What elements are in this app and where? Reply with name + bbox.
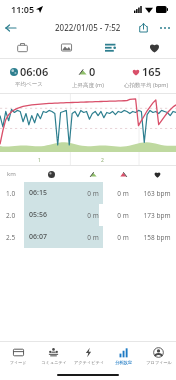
staticText: 0 m xyxy=(78,233,108,242)
button[interactable]: Splits xyxy=(88,37,132,58)
button[interactable]: 06:06 xyxy=(0,59,58,93)
staticText: 0 m xyxy=(108,189,138,198)
button[interactable]: Summary xyxy=(0,37,44,58)
staticText: コミュニティ xyxy=(41,360,67,365)
staticText: 06:06 xyxy=(20,64,49,79)
staticText: 平均ペース xyxy=(15,81,43,88)
button[interactable]: 分析設定 xyxy=(106,342,141,370)
button[interactable]: フィード xyxy=(0,342,36,370)
staticText: 06:15 xyxy=(29,188,78,198)
button[interactable]: Map xyxy=(44,37,88,58)
button[interactable]: 2.5 xyxy=(0,226,176,248)
staticText: 173 bpm xyxy=(138,211,176,220)
staticText: フィード xyxy=(9,360,27,365)
staticText: 2.0 xyxy=(6,211,24,220)
staticText: 1 xyxy=(38,157,41,164)
staticText: 2 xyxy=(101,157,104,164)
staticText: 心拍数平均 (bpm) xyxy=(124,81,169,89)
button[interactable]: 2.0 xyxy=(0,204,176,226)
staticText: 0 xyxy=(89,64,96,79)
button[interactable]: Share xyxy=(132,18,154,37)
button[interactable]: 1.0 xyxy=(0,182,176,204)
staticText: km xyxy=(7,170,24,178)
staticText: 分析設定 xyxy=(115,360,132,365)
button[interactable]: More options xyxy=(154,18,176,37)
staticText: 1.0 xyxy=(6,189,24,198)
staticText: アクティビティ xyxy=(74,360,104,365)
button[interactable]: プロフィール xyxy=(141,342,176,370)
staticText: 0 m xyxy=(108,211,138,220)
staticText: 163 bpm xyxy=(138,189,176,198)
staticText: 06:07 xyxy=(29,232,78,242)
button[interactable]: Back xyxy=(0,18,22,37)
staticText: プロフィール xyxy=(146,360,172,365)
staticText: 11:05 xyxy=(11,3,35,15)
staticText: 165 xyxy=(142,64,161,79)
staticText: 158 bpm xyxy=(138,233,176,242)
button[interactable]: コミュニティ xyxy=(36,342,71,370)
button[interactable]: 0 xyxy=(58,59,117,93)
staticText: 2.5 xyxy=(6,233,24,242)
staticText: 上昇高度 (m) xyxy=(72,81,104,89)
staticText: 0 m xyxy=(78,211,108,220)
staticText: 0 m xyxy=(78,189,108,198)
button[interactable]: 165 xyxy=(117,59,176,93)
staticText: 2022/01/05 - 7:52 xyxy=(55,22,121,33)
staticText: 05:56 xyxy=(29,210,78,220)
button[interactable]: Heart rate xyxy=(132,37,176,58)
staticText: 0 m xyxy=(108,233,138,242)
button[interactable]: アクティビティ xyxy=(71,342,106,370)
